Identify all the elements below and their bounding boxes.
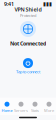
staticText: Home: [1, 108, 12, 113]
staticText: 9:41: [4, 0, 14, 8]
staticText: Protected: [20, 13, 36, 18]
staticText: Stats: [31, 108, 39, 113]
button[interactable]: Connect: [23, 58, 33, 68]
staticText: Not Connected: [10, 40, 46, 47]
button[interactable]: Home: [0, 100, 14, 115]
button[interactable]: Servers: [14, 100, 28, 115]
button[interactable]: More: [42, 100, 56, 115]
staticText: ▮▮▮: [43, 1, 52, 7]
button[interactable]: Stats: [28, 100, 42, 115]
staticText: More: [44, 108, 54, 113]
staticText: VPN Shield: [14, 6, 41, 13]
staticText: Servers: [14, 108, 28, 113]
staticText: Tap to connect: [16, 69, 40, 74]
